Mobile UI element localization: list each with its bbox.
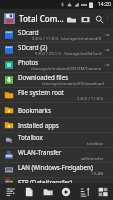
- staticText: Totalbox: [18, 133, 43, 141]
- button[interactable]: File system root: [0, 88, 113, 103]
- button[interactable]: FTP (Dateitransfer): [0, 178, 113, 183]
- button[interactable]: WLAN-Transfer: [0, 148, 113, 163]
- staticText: Photos: [18, 58, 39, 66]
- staticText: ://LAN: [91, 171, 104, 177]
- button[interactable]: App icon: [4, 13, 15, 24]
- button[interactable]: New folder: [39, 183, 56, 200]
- staticText: File system root: [18, 88, 64, 96]
- button[interactable]: New file: [20, 183, 37, 200]
- staticText: 2.8 G / 11.8 G /storage/emulated/0: [32, 36, 102, 42]
- button[interactable]: Select multiple: [94, 183, 111, 200]
- staticText: Bookmarks: [18, 106, 51, 114]
- staticText: Downloaded files: [18, 73, 69, 81]
- button[interactable]: Sort by name: [76, 183, 93, 200]
- button[interactable]: Downloaded files: [0, 73, 113, 88]
- button[interactable]: LAN (Windows-Freigaben): [0, 163, 113, 178]
- button[interactable]: SDcard: [0, 28, 113, 43]
- staticText: wifitransfer: [81, 156, 104, 162]
- button[interactable]: Totalbox: [0, 133, 113, 148]
- staticText: FTP (Dateitransfer): [18, 178, 73, 183]
- staticText: LAN (Windows-Freigaben): [18, 163, 93, 171]
- button[interactable]: Properties: [57, 183, 74, 200]
- staticText: Total Com...: [19, 13, 64, 24]
- button[interactable]: Bookmarks: [0, 103, 113, 118]
- staticText: totalbox: [87, 141, 104, 147]
- staticText: 2.8 G / 11.8 G: [77, 96, 104, 102]
- button[interactable]: SDcard (2): [0, 43, 113, 58]
- staticText: SDcard: [18, 28, 39, 36]
- button[interactable]: More options: [106, 13, 109, 24]
- button[interactable]: Search: [92, 12, 106, 26]
- staticText: Installed apps: [18, 121, 59, 129]
- button[interactable]: Installed apps: [0, 118, 113, 133]
- staticText: SDcard (2): [18, 43, 48, 51]
- staticText: 9.8 G / 29.1 G /storage/extSdCard: [35, 51, 102, 57]
- button[interactable]: Sort options: [2, 183, 19, 200]
- staticText: /storage/emulated/0/DCIM/Camera: [31, 66, 102, 72]
- staticText: WLAN-Transfer: [18, 148, 62, 156]
- staticText: /storage/emulated/0/download: [42, 81, 104, 87]
- staticText: 14:20: [98, 1, 111, 8]
- button[interactable]: Open folder: [64, 12, 78, 26]
- button[interactable]: Select: [78, 12, 92, 26]
- button[interactable]: Photos: [0, 58, 113, 73]
